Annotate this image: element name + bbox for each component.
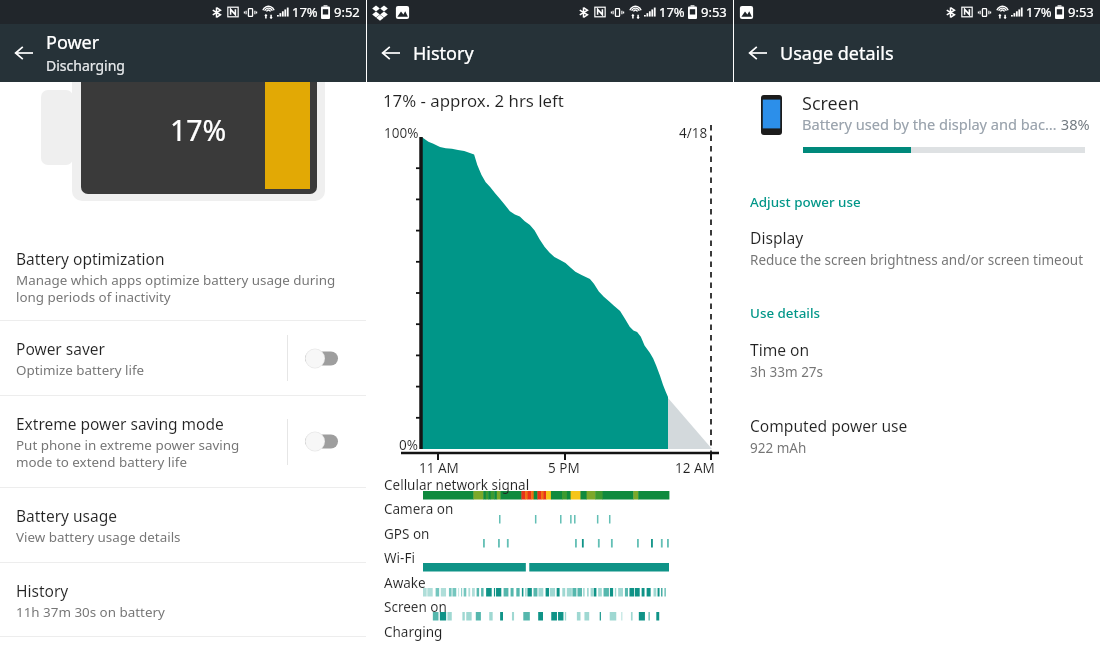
staticText: 3h 33m 27s (750, 363, 824, 381)
button[interactable]: Time on (734, 339, 1100, 381)
staticText: Screen (802, 91, 860, 116)
button[interactable] (288, 321, 360, 395)
staticText: Awake (384, 574, 426, 592)
button[interactable]: Computed power use (734, 415, 1100, 457)
staticText: Cellular network signal (384, 476, 530, 494)
button[interactable]: Adjust power use (750, 193, 861, 211)
staticText: 38% (1057, 114, 1090, 134)
button[interactable]: Back (371, 33, 411, 73)
staticText: Adjust power use (750, 193, 861, 211)
button[interactable]: Battery usage (0, 488, 366, 562)
staticText: 922 mAh (750, 439, 807, 457)
button[interactable]: Back (738, 33, 778, 73)
staticText: 0% (399, 436, 418, 454)
button[interactable]: Extreme power saving mode (0, 396, 366, 487)
staticText: 9:52 (334, 3, 360, 21)
staticText: 17% (659, 3, 685, 21)
button[interactable]: Use details (750, 304, 821, 322)
staticText: Optimize battery life (16, 361, 145, 379)
button[interactable]: History (0, 563, 366, 636)
staticText: Reduce the screen brightness and/or scre… (750, 251, 1084, 269)
staticText: View battery usage details (16, 528, 181, 546)
staticText: 17% - approx. 2 hrs left (383, 89, 564, 112)
staticText: 9:53 (701, 3, 727, 21)
staticText: Usage details (780, 41, 894, 66)
staticText: Time on (750, 339, 810, 360)
button[interactable]: Screen (734, 91, 1100, 136)
staticText: Manage which apps optimize battery usage… (16, 271, 336, 306)
staticText: Screen on (384, 598, 447, 616)
staticText: 11 AM (419, 459, 459, 477)
button[interactable]: Back (4, 33, 44, 73)
staticText: 4/18 (679, 124, 708, 142)
staticText: Charging (384, 623, 443, 641)
staticText: Wi-Fi (384, 549, 415, 567)
staticText: Camera on (384, 500, 454, 518)
staticText: Extreme power saving mode (16, 413, 224, 434)
staticText: 11h 37m 30s on battery (16, 603, 165, 621)
staticText: History (16, 580, 69, 601)
button[interactable] (288, 396, 360, 487)
staticText: Display (750, 227, 804, 248)
staticText: Computed power use (750, 415, 908, 436)
staticText: Power (46, 30, 100, 55)
staticText: 17% (292, 3, 318, 21)
staticText: Power saver (16, 338, 105, 359)
staticText: Use details (750, 304, 821, 322)
staticText: GPS on (384, 525, 430, 543)
button[interactable]: Power saver (0, 321, 366, 395)
staticText: 12 AM (675, 459, 715, 477)
staticText: 5 PM (548, 459, 580, 477)
staticText: 9:53 (1068, 3, 1094, 21)
staticText: Battery used by the display and bac… (802, 114, 1057, 134)
button[interactable]: Battery optimization (0, 246, 366, 320)
staticText: Battery optimization (16, 248, 165, 269)
button[interactable]: Display (734, 227, 1100, 269)
staticText: Battery usage (16, 505, 118, 526)
staticText: Put phone in extreme power saving mode t… (16, 436, 240, 471)
staticText: 17% (170, 111, 227, 150)
staticText: 17% (1026, 3, 1052, 21)
staticText: 100% (384, 124, 419, 142)
staticText: History (413, 41, 474, 66)
staticText: Discharging (46, 56, 125, 75)
